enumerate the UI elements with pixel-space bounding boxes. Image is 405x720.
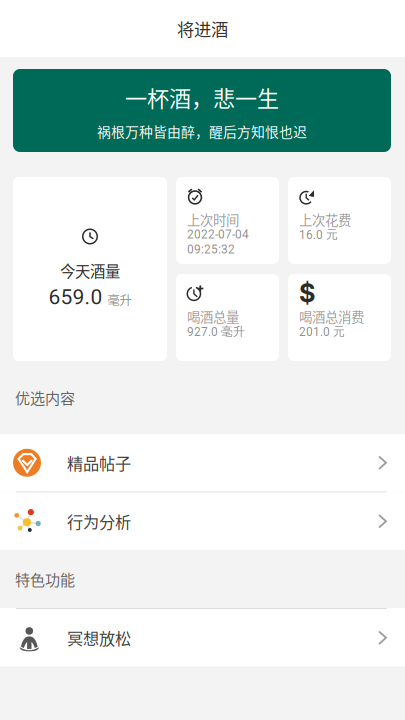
staticText: 将进酒 — [177, 16, 228, 41]
staticText: 一杯酒，悲一生 — [125, 81, 279, 113]
staticText: 祸根万种皆由醉，醒后方知恨也迟 — [97, 121, 307, 141]
staticText: 优选内容 — [15, 387, 75, 408]
staticText: $ — [299, 278, 315, 308]
staticText: 上次时间 — [187, 210, 239, 229]
button[interactable]: 精品帖子 — [0, 434, 405, 491]
staticText: 今天酒量 — [60, 259, 120, 282]
staticText: 2022-07-04 — [187, 227, 249, 241]
staticText: 喝酒总量 — [187, 307, 239, 326]
staticText: 精品帖子 — [67, 451, 131, 474]
staticText: 毫升 — [107, 290, 131, 308]
staticText: 行为分析 — [67, 509, 131, 533]
button[interactable]: 冥想放松 — [0, 609, 405, 666]
staticText: 927.0 毫升 — [187, 324, 245, 339]
staticText: 特色功能 — [15, 568, 75, 590]
staticText: 16.0 元 — [299, 227, 338, 242]
staticText: 09:25:32 — [187, 242, 235, 256]
staticText: 喝酒总消费 — [299, 307, 364, 326]
button[interactable]: 行为分析 — [0, 492, 405, 550]
staticText: 冥想放松 — [67, 626, 131, 649]
staticText: 上次花费 — [299, 210, 351, 229]
staticText: 201.0 元 — [299, 324, 345, 339]
staticText: 659.0 — [48, 285, 102, 309]
